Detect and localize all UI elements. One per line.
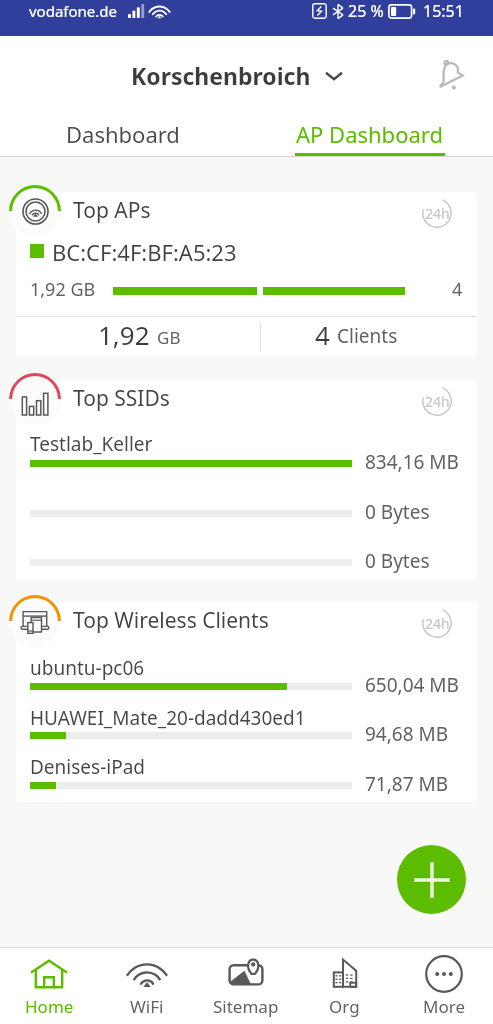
staticText: vodafone.de <box>29 1 118 21</box>
staticText: Dashboard <box>66 119 180 149</box>
button[interactable]: Home <box>0 948 98 1024</box>
button[interactable]: Sitemap <box>196 948 295 1024</box>
button[interactable]: AP Dashboard <box>246 110 493 157</box>
button[interactable]: Notifications <box>427 51 475 99</box>
staticText: More <box>423 995 465 1018</box>
staticText: 25 % <box>348 0 384 22</box>
staticText: 1,92 <box>98 317 150 352</box>
staticText: 0 Bytes <box>365 499 430 525</box>
staticText: Sitemap <box>213 995 279 1018</box>
staticText: AP Dashboard <box>296 119 443 149</box>
staticText: 24h <box>425 614 450 633</box>
staticText: ubuntu-pc06 <box>30 655 145 681</box>
button[interactable]: Dashboard <box>0 110 246 157</box>
staticText: 650,04 MB <box>365 672 459 698</box>
button[interactable]: Top APs <box>16 192 477 357</box>
staticText: 0 Bytes <box>365 548 430 574</box>
staticText: Denises-iPad <box>30 754 146 780</box>
staticText: 94,68 MB <box>365 721 449 747</box>
staticText: Korschenbroich <box>131 60 311 91</box>
button[interactable]: Korschenbroich <box>131 60 342 91</box>
staticText: 24h <box>425 204 450 223</box>
staticText: 71,87 MB <box>365 771 449 797</box>
staticText: Clients <box>337 323 398 349</box>
staticText: Testlab_Keller <box>30 431 153 457</box>
button[interactable]: Top SSIDs <box>16 380 477 580</box>
button[interactable]: WiFi <box>98 948 196 1024</box>
button[interactable]: Org <box>295 948 394 1024</box>
staticText: WiFi <box>130 995 164 1018</box>
staticText: Home <box>25 995 74 1018</box>
staticText: Top Wireless Clients <box>73 606 269 635</box>
button[interactable]: Add <box>397 845 466 914</box>
staticText: 4 <box>315 317 330 352</box>
staticText: 1,92 GB <box>30 277 96 302</box>
button[interactable]: Top Wireless Clients <box>16 602 477 802</box>
staticText: Top SSIDs <box>73 384 170 413</box>
staticText: GB <box>157 326 181 349</box>
staticText: 4 <box>452 277 463 302</box>
staticText: 834,16 MB <box>365 449 459 475</box>
staticText: 15:51 <box>423 0 464 22</box>
staticText: HUAWEI_Mate_20-dadd430ed1 <box>30 705 306 731</box>
staticText: BC:CF:4F:BF:A5:23 <box>52 237 237 267</box>
staticText: Org <box>329 995 360 1018</box>
button[interactable]: More <box>394 948 493 1024</box>
staticText: Top APs <box>73 196 151 225</box>
staticText: 24h <box>425 392 450 411</box>
